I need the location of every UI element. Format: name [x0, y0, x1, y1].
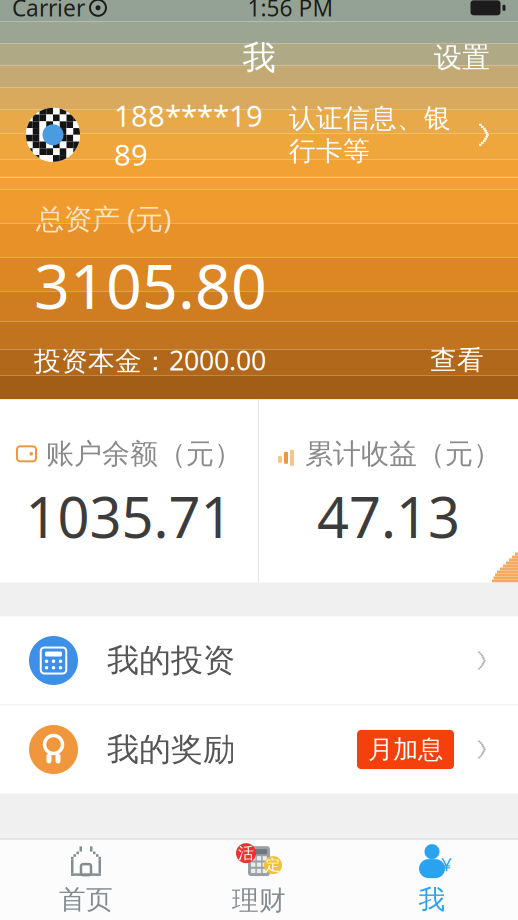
- button[interactable]: 活: [172, 839, 346, 920]
- staticText: 查看: [430, 344, 484, 377]
- staticText: 累计收益（元）: [305, 437, 501, 471]
- button[interactable]: 投资本金：2000.00: [0, 334, 518, 386]
- staticText: 首页: [59, 883, 113, 916]
- staticText: 活: [238, 843, 254, 863]
- staticText: 设置: [434, 41, 490, 75]
- button[interactable]: 188****1989: [0, 93, 518, 177]
- staticText: 总资产 (元): [36, 200, 171, 237]
- button[interactable]: 账户余额（元）: [0, 399, 258, 582]
- staticText: 我: [418, 883, 445, 916]
- staticText: 账户余额（元）: [46, 437, 242, 471]
- staticText: 我: [242, 37, 275, 78]
- staticText: 3105.80: [34, 243, 267, 326]
- button[interactable]: 设置: [418, 29, 506, 87]
- button[interactable]: 累计收益（元）: [259, 399, 518, 582]
- staticText: 47.13: [317, 479, 460, 553]
- staticText: ¥: [441, 852, 452, 876]
- button[interactable]: 我的投资: [0, 616, 518, 704]
- button[interactable]: 首页: [0, 839, 172, 920]
- staticText: 投资本金：2000.00: [34, 342, 266, 378]
- staticText: 理财: [232, 884, 286, 917]
- staticText: 188****1989: [114, 96, 263, 174]
- staticText: Carrier: [12, 0, 85, 23]
- button[interactable]: ¥: [346, 839, 518, 920]
- staticText: 定: [265, 856, 280, 874]
- staticText: 认证信息、银行卡等: [289, 102, 451, 167]
- staticText: 我的奖励: [107, 730, 235, 769]
- staticText: 月加息: [368, 734, 443, 765]
- staticText: 我的投资: [107, 641, 235, 680]
- staticText: 1035.71: [25, 479, 232, 553]
- staticText: 1:56 PM: [247, 0, 333, 23]
- button[interactable]: 我的奖励: [0, 705, 518, 793]
